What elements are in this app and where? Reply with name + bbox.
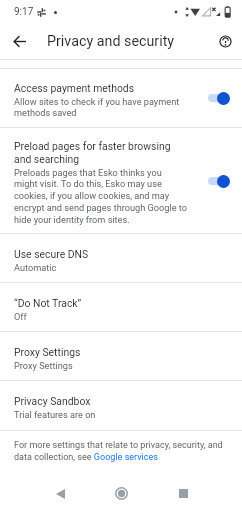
staticText: Allow sites to check if you have payment… [14, 96, 180, 118]
staticText: Trial features are on [14, 409, 96, 420]
button[interactable]: Proxy Settings [0, 332, 242, 380]
staticText: Privacy and security [47, 33, 175, 50]
staticText: Off [14, 311, 27, 322]
staticText: Preload pages for faster browsing and se… [14, 140, 171, 165]
button[interactable]: Preload pages for faster browsing and se… [0, 128, 242, 233]
button[interactable]: Navigate up [0, 24, 40, 59]
staticText: Privacy Sandbox [14, 395, 91, 407]
staticText: For more settings that relate to privacy… [14, 440, 236, 462]
button[interactable]: “Do Not Track” [0, 283, 242, 331]
button[interactable]: Access payment methods [0, 69, 242, 127]
button[interactable]: Home [106, 475, 136, 512]
staticText: 9:17 [14, 6, 34, 18]
staticText: Access payment methods [14, 82, 135, 94]
staticText: Use secure DNS [14, 248, 89, 260]
staticText: “Do Not Track” [14, 297, 82, 309]
staticText: Proxy Settings [14, 360, 73, 371]
staticText: Preloads pages that Esko thinks you migh… [14, 167, 187, 225]
button[interactable]: Toggle setting [205, 172, 233, 190]
button[interactable]: Toggle setting [205, 89, 233, 107]
button[interactable]: Help and feedback [208, 24, 242, 59]
button[interactable]: Recent apps [168, 475, 198, 512]
button[interactable]: Privacy Sandbox [0, 381, 242, 430]
button[interactable]: Use secure DNS [0, 234, 242, 282]
staticText: Automatic [14, 262, 57, 273]
staticText: Proxy Settings [14, 346, 81, 358]
button[interactable]: Back [45, 475, 75, 512]
